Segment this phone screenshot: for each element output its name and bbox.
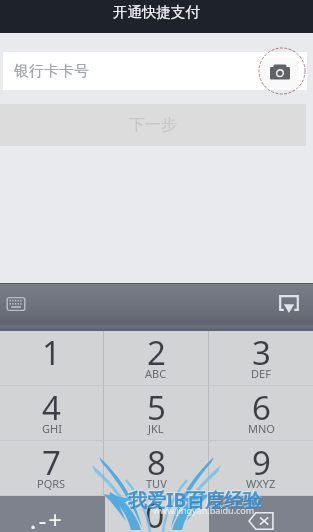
- staticText: 4: [42, 385, 61, 430]
- button[interactable]: 6: [209, 386, 313, 441]
- button[interactable]: 0: [105, 496, 209, 532]
- staticText: PQRS: [37, 476, 66, 491]
- staticText: GHI: [42, 421, 62, 436]
- button[interactable]: Delete: [209, 496, 313, 532]
- staticText: 9: [252, 440, 271, 485]
- staticText: 银行卡卡号: [14, 62, 89, 81]
- staticText: 3: [252, 330, 271, 375]
- staticText: ABC: [145, 366, 167, 381]
- staticText: 我爱IB百度经验: [127, 486, 262, 512]
- staticText: MNO: [248, 421, 275, 436]
- staticText: TUV: [146, 476, 167, 491]
- button[interactable]: Hide keyboard: [276, 290, 302, 316]
- staticText: www.jingyan.baidu.com: [153, 504, 255, 516]
- button[interactable]: 8: [104, 441, 208, 496]
- staticText: 0: [145, 492, 165, 528]
- staticText: 下一步: [129, 115, 177, 135]
- button[interactable]: Switch keyboard: [3, 291, 29, 317]
- staticText: 7: [42, 440, 61, 485]
- staticText: 我爱IB百度经验: [128, 487, 263, 513]
- staticText: .-+: [30, 504, 65, 532]
- button[interactable]: .-+: [0, 496, 105, 532]
- staticText: 1: [42, 330, 61, 375]
- staticText: 2: [147, 330, 166, 375]
- staticText: 5: [147, 385, 166, 430]
- staticText: 8: [147, 440, 166, 485]
- button[interactable]: 9: [209, 441, 313, 496]
- button[interactable]: 银行卡卡号: [3, 52, 307, 90]
- staticText: 开通快捷支付: [113, 3, 200, 21]
- button[interactable]: Scan bank card: [265, 56, 295, 86]
- button[interactable]: 1: [0, 331, 103, 386]
- button[interactable]: 3: [209, 331, 313, 386]
- button[interactable]: 2: [104, 331, 208, 386]
- staticText: 6: [252, 385, 271, 430]
- staticText: DEF: [251, 366, 271, 381]
- staticText: JKL: [148, 421, 164, 436]
- button[interactable]: 4: [0, 386, 103, 441]
- button[interactable]: 5: [104, 386, 208, 441]
- button[interactable]: 7: [0, 441, 103, 496]
- staticText: WXYZ: [246, 476, 276, 491]
